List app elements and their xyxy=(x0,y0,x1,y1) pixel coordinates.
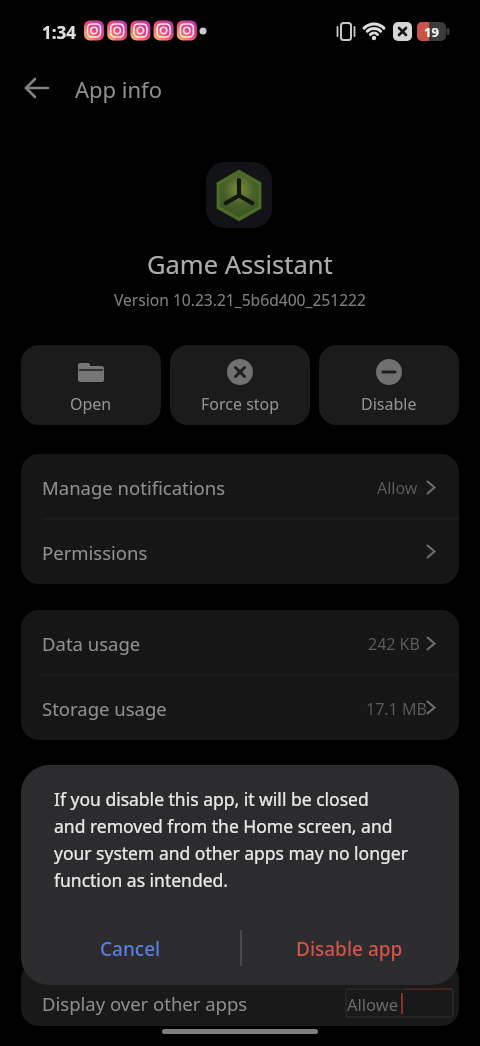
staticText: Cancel xyxy=(100,936,161,962)
staticText: Game Assistant xyxy=(147,247,333,279)
staticText: 19 xyxy=(424,23,439,41)
button[interactable]: Permissions xyxy=(21,519,459,584)
button[interactable]: Disable xyxy=(319,345,459,425)
staticText: Display over other apps xyxy=(42,991,248,1016)
staticText: Storage usage xyxy=(42,696,167,721)
staticText: Disable xyxy=(361,393,417,415)
button[interactable]: Manage notifications xyxy=(21,454,459,519)
button[interactable] xyxy=(16,68,60,108)
staticText: Open xyxy=(70,393,112,415)
staticText: Disable app xyxy=(296,936,403,962)
staticText: Data usage xyxy=(42,631,141,656)
staticText: Allow xyxy=(377,477,418,499)
staticText: Manage notifications xyxy=(42,475,226,500)
button[interactable]: Disable app xyxy=(240,928,459,970)
staticText: Version 10.23.21_5b6d400_251222 xyxy=(114,289,366,310)
staticText: 17.1 MB xyxy=(366,698,427,720)
button[interactable]: Storage usage xyxy=(21,675,459,740)
staticText: App info xyxy=(75,74,162,104)
button[interactable]: Force stop xyxy=(170,345,310,425)
button[interactable]: Data usage xyxy=(21,610,459,675)
staticText: Allowe xyxy=(347,993,398,1015)
button[interactable] xyxy=(21,962,459,1026)
staticText: 242 KB xyxy=(368,633,420,655)
staticText: 1:34 xyxy=(42,21,76,44)
staticText: If you disable this app, it will be clos… xyxy=(54,787,408,892)
staticText: Force stop xyxy=(201,393,280,415)
staticText: Permissions xyxy=(42,540,148,565)
button[interactable]: Cancel xyxy=(21,928,240,970)
button[interactable]: Open xyxy=(21,345,161,425)
